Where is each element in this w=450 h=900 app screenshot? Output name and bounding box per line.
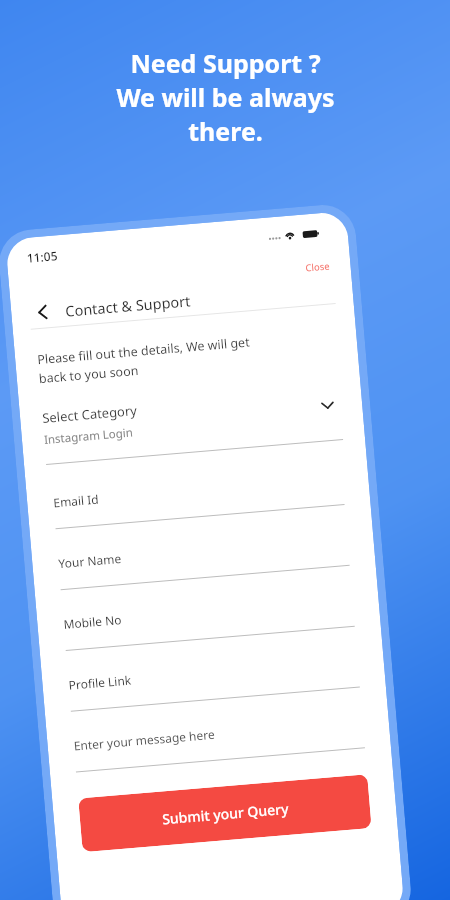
button[interactable]: Mobile No: [63, 592, 355, 651]
staticText: 11:05: [26, 247, 58, 266]
button[interactable]: Your Name: [58, 531, 350, 590]
staticText: Instagram Login: [43, 424, 134, 448]
button[interactable]: Profile Link: [68, 653, 360, 712]
button[interactable]: Email Id: [53, 470, 344, 529]
staticText: Please fill out the details, We will get…: [37, 333, 252, 387]
staticText: there.: [188, 114, 263, 148]
button[interactable]: Back: [24, 293, 61, 330]
staticText: Need Support ?: [130, 46, 321, 80]
button[interactable]: Submit your Query: [78, 774, 372, 852]
staticText: We will be always: [116, 80, 335, 114]
staticText: Select Category: [41, 401, 138, 427]
staticText: Email Id: [53, 491, 100, 510]
staticText: Contact & Support: [64, 290, 192, 321]
button[interactable]: Close: [301, 255, 335, 279]
button[interactable]: Enter your message here: [73, 713, 365, 772]
staticText: Profile Link: [68, 671, 132, 693]
button[interactable]: Expand category: [313, 391, 341, 419]
staticText: Mobile No: [63, 611, 122, 632]
staticText: Your Name: [58, 550, 122, 571]
staticText: Submit your Query: [161, 799, 289, 828]
staticText: Close: [305, 259, 331, 274]
staticText: Enter your message here: [73, 726, 216, 753]
